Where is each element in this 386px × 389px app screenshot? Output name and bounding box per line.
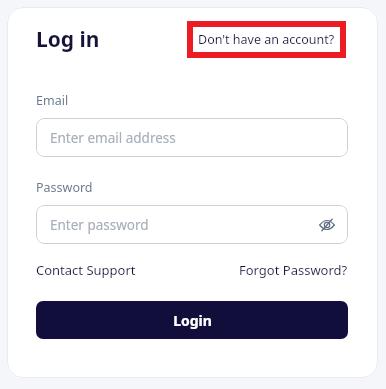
button[interactable]: Enter password xyxy=(36,205,348,244)
staticText: Contact Support xyxy=(36,261,136,279)
staticText: Log in xyxy=(36,25,100,54)
button[interactable]: Enter email address xyxy=(36,118,348,157)
staticText: Password xyxy=(36,179,93,196)
button[interactable]: Show password xyxy=(316,214,338,236)
staticText: Don't have an account? xyxy=(198,31,335,48)
staticText: Enter password xyxy=(50,216,149,234)
button[interactable]: Login xyxy=(36,301,348,339)
staticText: Email xyxy=(36,92,69,109)
staticText: Enter email address xyxy=(50,129,176,147)
staticText: Login xyxy=(173,311,212,330)
staticText: Forgot Password? xyxy=(239,261,348,279)
button[interactable]: Contact Support xyxy=(36,261,136,279)
button[interactable]: Forgot Password? xyxy=(239,261,348,279)
button[interactable]: Don't have an account? xyxy=(187,21,346,58)
